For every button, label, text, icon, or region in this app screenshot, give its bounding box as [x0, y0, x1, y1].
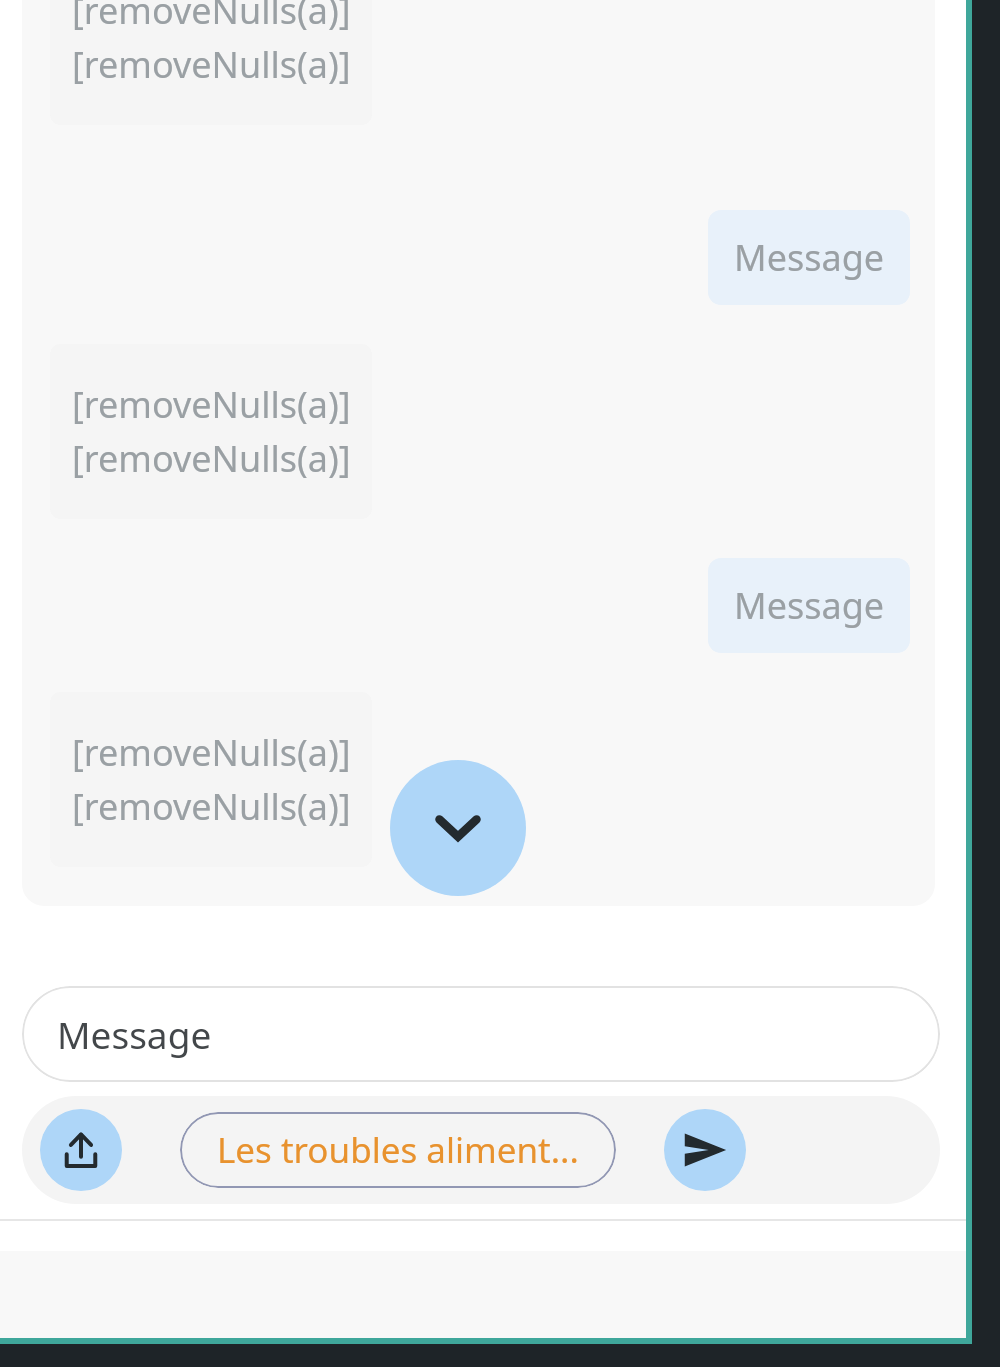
staticText: [removeNulls(a)] [72, 40, 351, 89]
staticText: Message [57, 1009, 212, 1059]
button[interactable]: [removeNulls(a)] [50, 692, 372, 867]
button[interactable]: Message [708, 210, 910, 305]
button[interactable]: Message [708, 558, 910, 653]
button[interactable]: [removeNulls(a)] [50, 0, 372, 125]
button[interactable]: [removeNulls(a)] [50, 344, 372, 519]
staticText: [removeNulls(a)] [72, 434, 351, 483]
button[interactable]: Scroll to bottom [390, 760, 526, 896]
staticText: [removeNulls(a)] [72, 0, 351, 35]
button[interactable]: Upload file [40, 1109, 122, 1191]
staticText: Message [734, 581, 885, 630]
button[interactable]: Send [664, 1109, 746, 1191]
staticText: Les troubles aliment... [217, 1126, 579, 1174]
staticText: [removeNulls(a)] [72, 728, 351, 777]
staticText: [removeNulls(a)] [72, 380, 351, 429]
staticText: Message [734, 233, 885, 282]
button[interactable]: Message [22, 986, 940, 1082]
button[interactable]: Les troubles aliment... [180, 1112, 616, 1188]
staticText: [removeNulls(a)] [72, 782, 351, 831]
